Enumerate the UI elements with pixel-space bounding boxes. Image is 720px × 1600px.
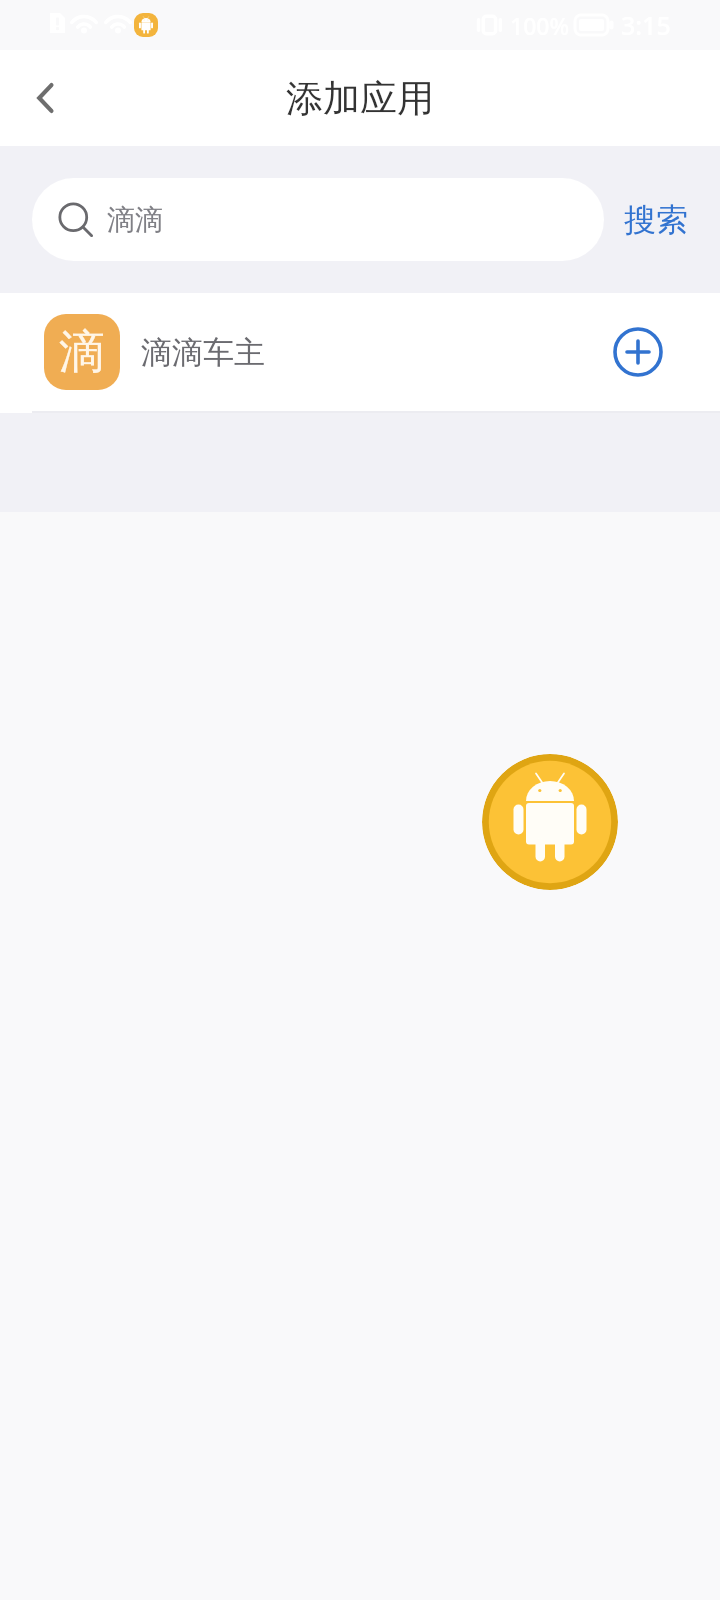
staticText: 搜索 [624, 200, 688, 240]
button[interactable]: 搜索 [624, 178, 688, 261]
button[interactable]: Add app [598, 312, 678, 392]
button[interactable]: 滴滴 [32, 178, 604, 261]
button[interactable]: Assistant [482, 754, 618, 890]
staticText: 添加应用 [286, 75, 434, 122]
staticText: 滴 [59, 323, 105, 381]
button[interactable]: Back [8, 60, 84, 136]
staticText: 滴滴车主 [141, 333, 265, 372]
staticText: 滴滴 [107, 202, 163, 237]
button[interactable]: 滴 [0, 293, 720, 411]
